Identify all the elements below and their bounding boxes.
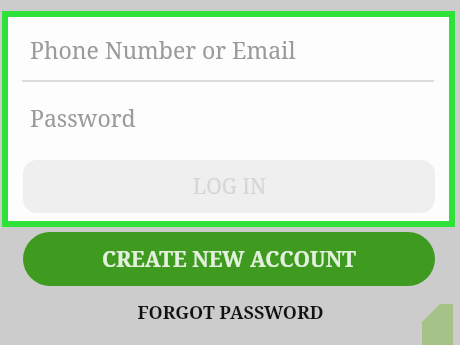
staticText: CREATE NEW ACCOUNT: [102, 245, 356, 274]
button[interactable]: Password: [22, 92, 434, 142]
button[interactable]: Phone Number or Email: [22, 24, 434, 74]
staticText: Phone Number or Email: [30, 34, 296, 65]
staticText: FORGOT PASSWORD: [137, 300, 324, 325]
button[interactable]: CREATE NEW ACCOUNT: [23, 232, 435, 286]
button[interactable]: LOG IN: [23, 160, 435, 213]
staticText: Password: [30, 102, 136, 133]
staticText: LOG IN: [193, 172, 266, 201]
button[interactable]: FORGOT PASSWORD: [100, 296, 360, 328]
